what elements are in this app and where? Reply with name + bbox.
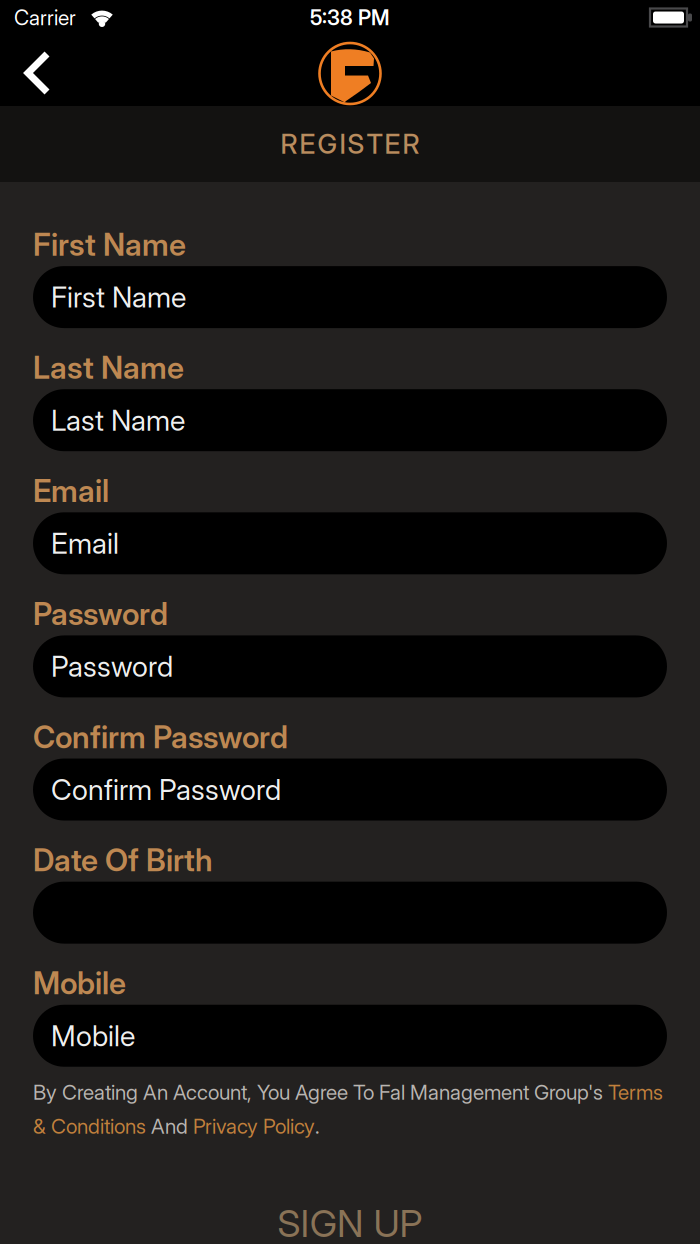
button[interactable]: Back: [0, 40, 67, 106]
button[interactable]: Privacy Policy: [193, 1114, 315, 1139]
staticText: And: [146, 1114, 193, 1139]
staticText: Confirm Password: [51, 772, 281, 807]
staticText: Privacy Policy: [193, 1114, 315, 1139]
staticText: Email: [51, 526, 119, 561]
button[interactable]: Date Of Birth: [33, 882, 667, 944]
staticText: Password: [33, 595, 168, 632]
button[interactable]: SIGN UP: [277, 1201, 423, 1244]
staticText: Mobile: [51, 1018, 135, 1053]
button[interactable]: Mobile: [33, 1005, 667, 1067]
staticText: Date Of Birth: [33, 841, 213, 879]
staticText: By Creating An Account, You Agree To Fal…: [33, 1080, 608, 1105]
staticText: Last Name: [33, 349, 184, 386]
button[interactable]: Terms: [608, 1080, 663, 1105]
button[interactable]: Password: [33, 635, 667, 697]
staticText: .: [315, 1114, 320, 1139]
staticText: Last Name: [51, 403, 185, 438]
button[interactable]: & Conditions: [33, 1114, 146, 1139]
staticText: First Name: [51, 280, 186, 314]
staticText: First Name: [33, 226, 186, 263]
button[interactable]: Email: [33, 512, 667, 574]
staticText: SIGN UP: [277, 1201, 423, 1244]
button[interactable]: First Name: [33, 266, 667, 328]
staticText: Carrier: [14, 5, 76, 30]
staticText: & Conditions: [33, 1114, 146, 1139]
staticText: Password: [51, 649, 173, 684]
staticText: Terms: [608, 1080, 663, 1105]
staticText: Email: [33, 472, 109, 509]
staticText: 5:38 PM: [310, 5, 390, 30]
staticText: Confirm Password: [33, 718, 288, 755]
button[interactable]: Last Name: [33, 389, 667, 451]
button[interactable]: Confirm Password: [33, 758, 667, 820]
staticText: REGISTER: [280, 128, 419, 160]
staticText: Mobile: [33, 965, 126, 1002]
